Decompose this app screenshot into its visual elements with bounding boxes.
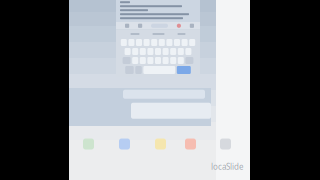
staticText: locaSlide	[211, 161, 244, 172]
